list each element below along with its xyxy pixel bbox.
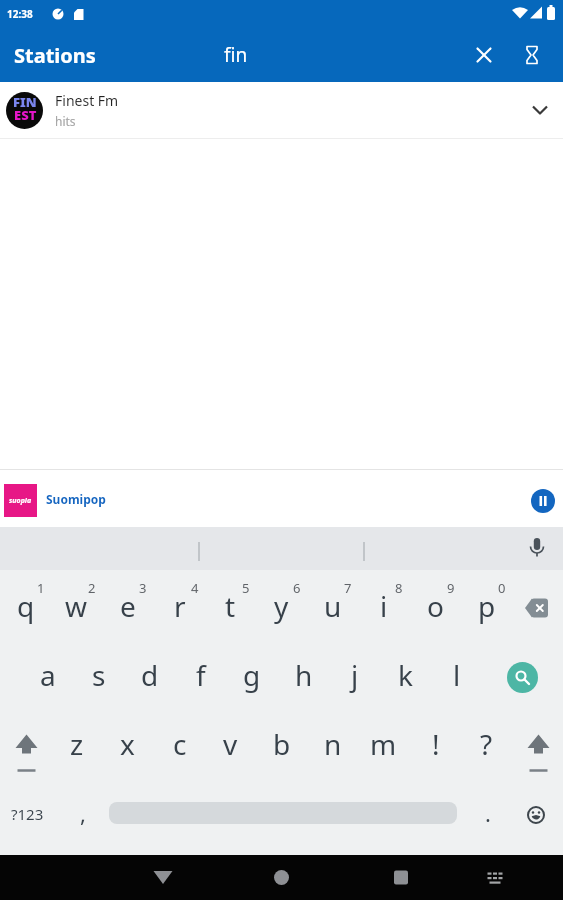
staticText: q (17, 587, 35, 625)
button[interactable] (512, 711, 563, 781)
button[interactable] (515, 86, 563, 134)
button[interactable] (512, 35, 552, 75)
staticText: Stations (14, 42, 96, 69)
staticText: 2 (88, 579, 96, 597)
staticText: ?123 (11, 804, 44, 824)
staticText: . (485, 798, 491, 828)
button[interactable]: ! (410, 711, 461, 781)
button[interactable]: z (51, 711, 102, 781)
button[interactable] (517, 527, 557, 570)
button[interactable]: s (73, 642, 124, 712)
staticText: m (370, 725, 397, 763)
staticText: t (225, 587, 236, 625)
button[interactable] (497, 652, 547, 702)
staticText: f (196, 656, 206, 694)
button[interactable]: . (462, 780, 513, 850)
staticText: suopla (9, 496, 32, 506)
staticText: ? (480, 725, 493, 763)
staticText: EST (14, 106, 37, 124)
staticText: fin (224, 42, 248, 68)
staticText: ! (432, 725, 440, 763)
button[interactable]: j (329, 642, 380, 712)
staticText: u (324, 587, 342, 625)
staticText: a (40, 656, 56, 694)
staticText: r (174, 587, 186, 625)
staticText: z (70, 725, 84, 763)
button[interactable]: ?123 (0, 778, 54, 853)
staticText: v (223, 725, 238, 763)
button[interactable]: y (256, 573, 307, 643)
button[interactable] (0, 711, 51, 781)
button[interactable]: a (22, 642, 73, 712)
button[interactable]: c (154, 711, 205, 781)
staticText: l (453, 656, 461, 694)
staticText: 0 (498, 579, 506, 597)
button[interactable]: ? (461, 711, 512, 781)
staticText: Suomipop (46, 491, 106, 507)
button[interactable]: k (380, 642, 431, 712)
button[interactable] (140, 855, 281, 900)
staticText: 8 (395, 579, 403, 597)
staticText: FIN (13, 93, 37, 111)
staticText: hits (55, 113, 76, 129)
button[interactable]: v (205, 711, 256, 781)
button[interactable]: p (461, 573, 512, 643)
button[interactable]: u (307, 573, 358, 643)
button[interactable]: suopla (0, 470, 563, 527)
button[interactable]: n (307, 711, 358, 781)
staticText: 4 (191, 579, 199, 597)
button[interactable]: d (124, 642, 175, 712)
staticText: 12:38 (7, 7, 33, 21)
staticText: 7 (344, 579, 352, 597)
staticText: n (324, 725, 342, 763)
button[interactable]: f (175, 642, 226, 712)
button[interactable]: t (205, 573, 256, 643)
button[interactable]: r (154, 573, 205, 643)
button[interactable] (464, 35, 504, 75)
button[interactable] (281, 855, 422, 900)
staticText: , (80, 798, 86, 828)
button[interactable]: o (410, 573, 461, 643)
button[interactable]: m (358, 711, 409, 781)
staticText: c (173, 725, 187, 763)
button[interactable] (531, 489, 555, 513)
staticText: 1 (37, 579, 45, 597)
staticText: Finest Fm (55, 91, 119, 110)
button[interactable]: q (0, 573, 51, 643)
staticText: d (141, 656, 159, 694)
staticText: y (274, 587, 289, 625)
staticText: i (380, 587, 388, 625)
button[interactable]: g (226, 642, 277, 712)
staticText: 5 (242, 579, 250, 597)
staticText: 6 (293, 579, 301, 597)
button[interactable] (511, 778, 561, 852)
staticText: 9 (447, 579, 455, 597)
button[interactable] (512, 573, 563, 643)
staticText: j (351, 656, 359, 694)
button[interactable]: w (51, 573, 102, 643)
staticText: e (120, 587, 136, 625)
button[interactable] (422, 855, 563, 900)
staticText: 3 (139, 579, 147, 597)
button[interactable]: h (278, 642, 329, 712)
staticText: p (478, 587, 496, 625)
button[interactable]: l (431, 642, 482, 712)
staticText: s (92, 656, 106, 694)
staticText: h (295, 656, 313, 694)
button[interactable]: i (358, 573, 409, 643)
staticText: x (120, 725, 135, 763)
button[interactable]: FIN (0, 82, 563, 138)
button[interactable]: x (102, 711, 153, 781)
staticText: k (398, 656, 413, 694)
staticText: w (65, 587, 88, 625)
button[interactable]: b (256, 711, 307, 781)
button[interactable]: e (102, 573, 153, 643)
staticText: g (243, 656, 261, 694)
staticText: o (427, 587, 444, 625)
button[interactable]: , (57, 780, 108, 850)
staticText: b (273, 725, 291, 763)
